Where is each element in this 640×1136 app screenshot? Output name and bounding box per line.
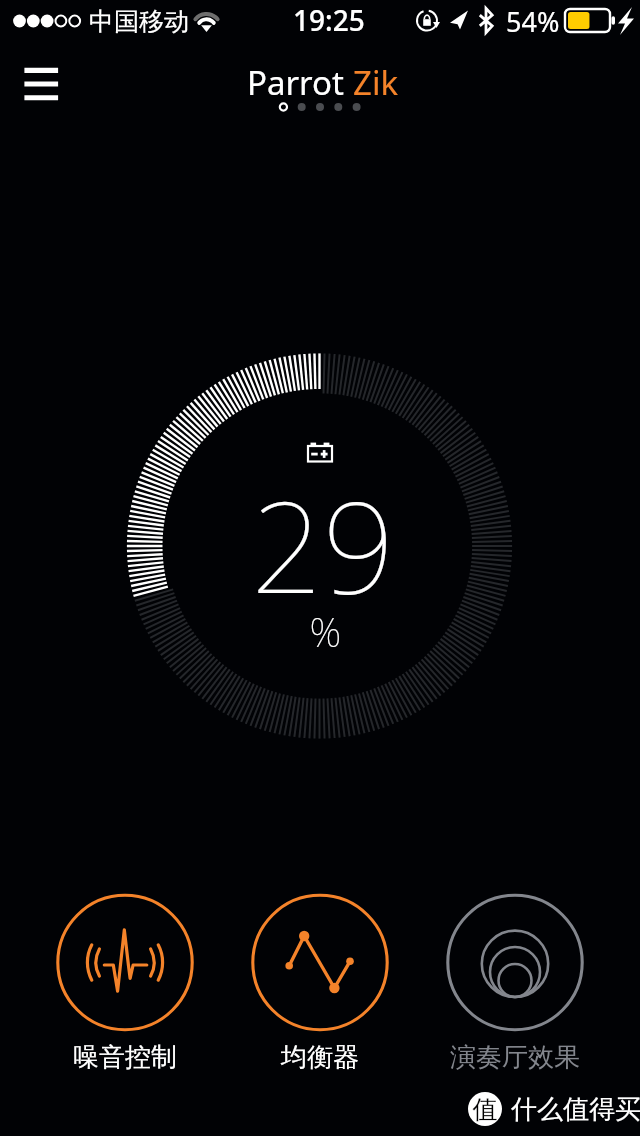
button[interactable]: 噪音控制 [30,888,220,1080]
button[interactable]: 演奏厅效果 [420,888,610,1080]
button[interactable]: Menu [10,56,72,110]
button[interactable]: Battery 29 percent [127,354,512,739]
button[interactable]: 均衡器 [225,888,415,1080]
